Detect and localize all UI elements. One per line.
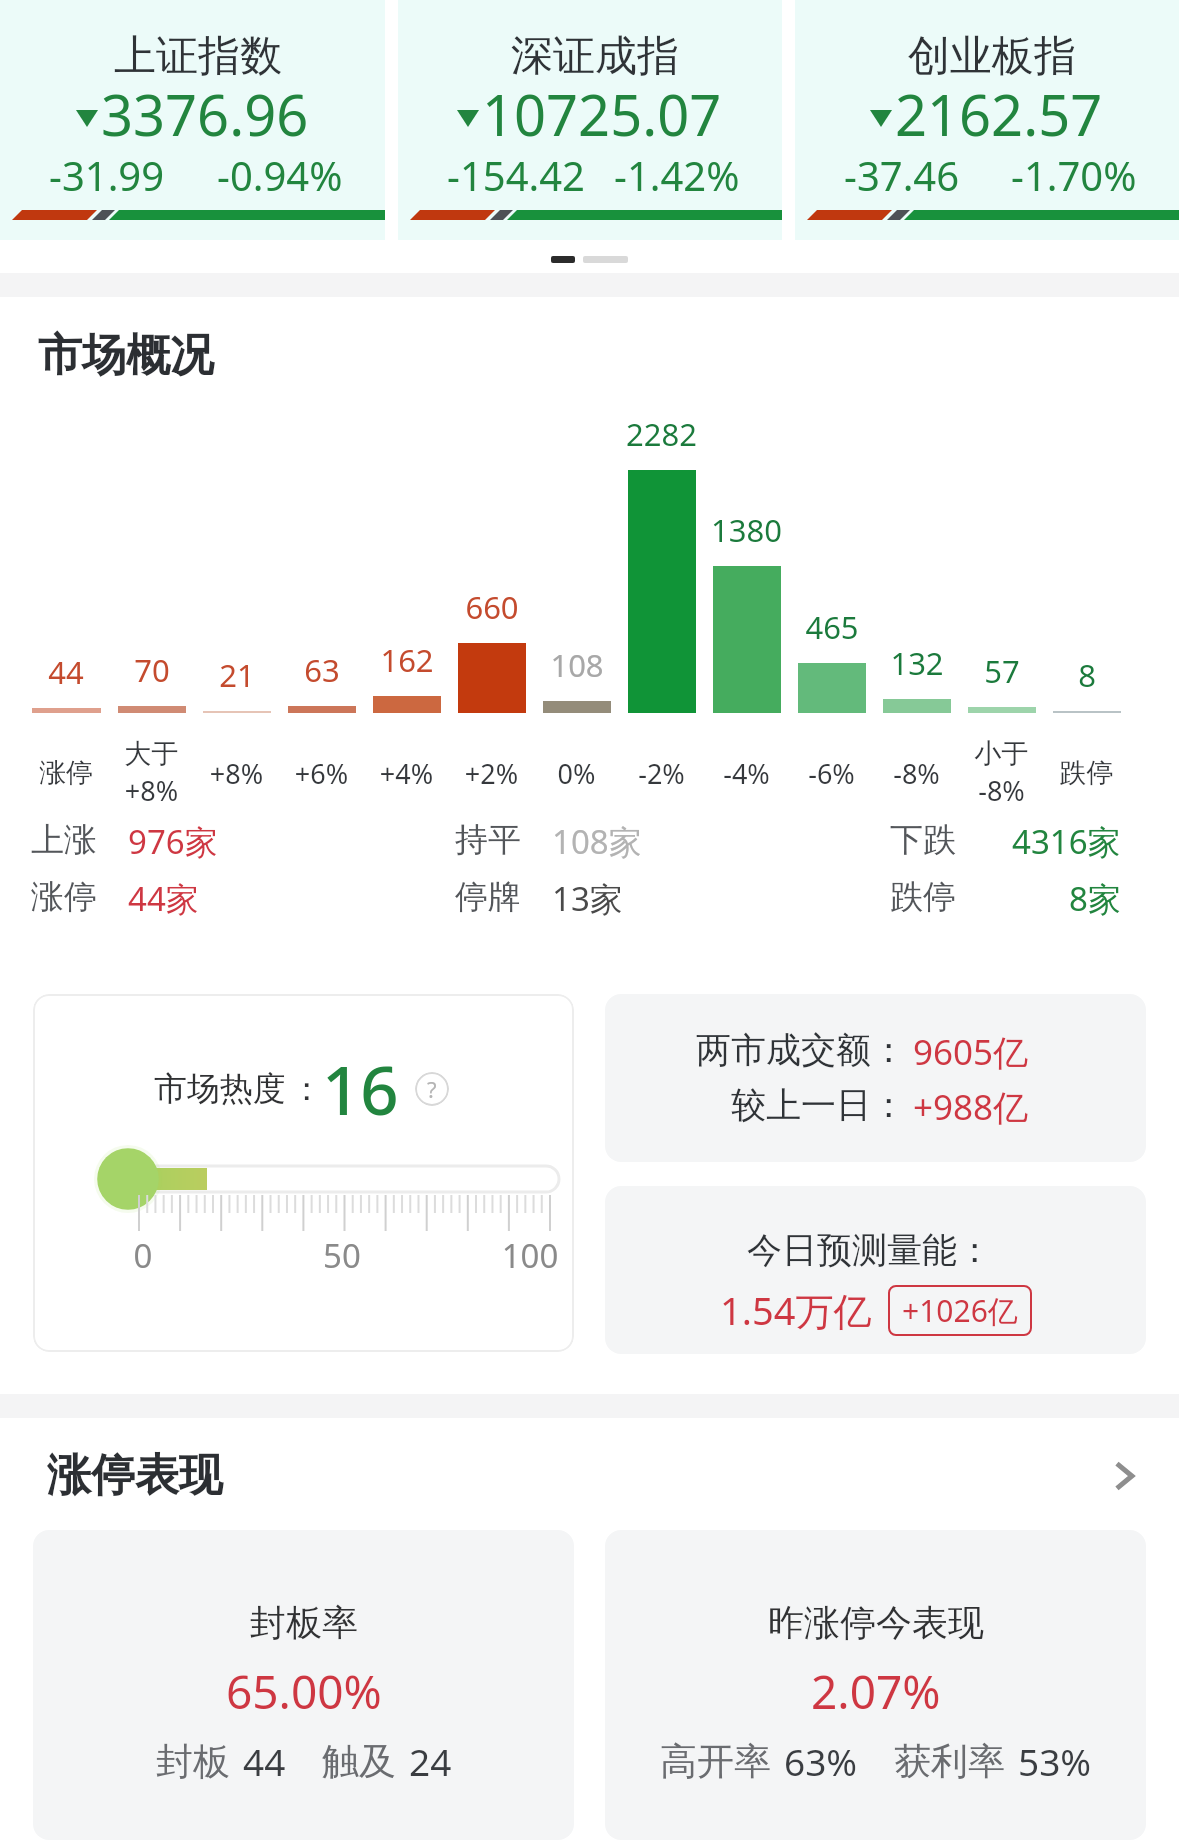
staticText: 跌停 xyxy=(890,876,956,918)
staticText: -31.99 xyxy=(49,148,165,202)
staticText: 深证成指 xyxy=(511,30,679,83)
staticText: -37.46 xyxy=(844,148,960,202)
staticText: 108家 xyxy=(552,819,642,861)
staticText: 两市成交额： xyxy=(605,1028,906,1072)
staticText: 65.00% xyxy=(226,1660,382,1723)
staticText: -8% xyxy=(874,755,959,792)
staticText: 1380 xyxy=(711,509,782,551)
staticText: 今日预测量能： xyxy=(747,1228,992,1272)
staticText: 9605亿 xyxy=(913,1028,1029,1076)
staticText: -6% xyxy=(789,755,874,792)
staticText: -1.70% xyxy=(1011,148,1137,202)
staticText: 53% xyxy=(1018,1736,1092,1786)
staticText: 44 xyxy=(243,1736,286,1786)
staticText: 63 xyxy=(304,649,340,691)
staticText: 封板 xyxy=(156,1738,230,1785)
staticText: 50 xyxy=(302,1233,382,1278)
button[interactable]: 涨停表现 xyxy=(38,1448,1141,1503)
staticText: -2% xyxy=(619,755,704,792)
staticText: 13家 xyxy=(552,876,623,918)
staticText: 市场概况 xyxy=(38,328,214,383)
staticText: 0 xyxy=(103,1233,183,1278)
staticText: 大于 +8% xyxy=(109,737,194,809)
staticText: 触及 xyxy=(322,1738,396,1785)
staticText: 较上一日： xyxy=(605,1083,906,1127)
staticText: 获利率 xyxy=(894,1738,1005,1785)
staticText: 0% xyxy=(534,755,619,792)
staticText: 16 xyxy=(322,1043,399,1134)
staticText: +2% xyxy=(449,755,534,792)
staticText: 封板率 xyxy=(250,1600,358,1645)
staticText: 44家 xyxy=(128,876,199,918)
staticText: 70 xyxy=(134,649,170,691)
staticText: -1.42% xyxy=(614,148,740,202)
button[interactable]: 两市成交额： xyxy=(605,994,1146,1162)
staticText: 100 xyxy=(490,1233,570,1278)
button[interactable]: 深证成指 xyxy=(398,0,782,240)
staticText: 涨停 xyxy=(31,876,97,918)
staticText: 63% xyxy=(784,1736,858,1786)
button[interactable]: 封板率 xyxy=(33,1530,574,1840)
staticText: 涨停 xyxy=(23,756,109,790)
staticText: 4316家 xyxy=(1012,819,1121,861)
staticText: 8家 xyxy=(1069,876,1121,918)
staticText: 660 xyxy=(465,586,519,628)
button[interactable]: 今日预测量能： xyxy=(605,1186,1146,1354)
button[interactable]: 页面指示器 xyxy=(551,256,628,263)
staticText: -0.94% xyxy=(217,148,343,202)
staticText: 下跌 xyxy=(890,819,956,861)
staticText: 上涨 xyxy=(31,819,97,861)
button[interactable]: 说明 xyxy=(415,1072,449,1106)
staticText: 976家 xyxy=(128,819,218,861)
staticText: 21 xyxy=(219,654,255,696)
other: 查看更多 xyxy=(1102,1454,1146,1498)
staticText: 创业板指 xyxy=(908,30,1076,83)
staticText: 162 xyxy=(380,639,434,681)
staticText: 108 xyxy=(550,644,604,686)
staticText: 8 xyxy=(1078,654,1096,696)
staticText: 涨停表现 xyxy=(47,1448,223,1503)
staticText: 2.07% xyxy=(811,1660,941,1723)
staticText: 停牌 xyxy=(455,876,521,918)
staticText: 465 xyxy=(805,606,859,648)
button[interactable]: 市场热度 xyxy=(33,994,574,1352)
staticText: 2162.57 xyxy=(895,76,1103,152)
staticText: 24 xyxy=(409,1736,452,1786)
staticText: 小于 -8% xyxy=(959,737,1044,809)
staticText: -4% xyxy=(704,755,789,792)
staticText: 持平 xyxy=(455,819,521,861)
staticText: 10725.07 xyxy=(482,76,722,152)
staticText: 44 xyxy=(48,651,84,693)
staticText: 57 xyxy=(984,650,1020,692)
staticText: ： xyxy=(290,1068,316,1110)
button[interactable]: 昨涨停今表现 xyxy=(605,1530,1146,1840)
staticText: 上证指数 xyxy=(114,30,282,83)
staticText: 昨涨停今表现 xyxy=(768,1600,984,1645)
staticText: +8% xyxy=(194,755,279,792)
staticText: +988亿 xyxy=(913,1083,1029,1131)
staticText: +1026亿 xyxy=(902,1290,1018,1331)
staticText: 132 xyxy=(890,642,944,684)
staticText: 3376.96 xyxy=(101,76,309,152)
staticText: 1.54万亿 xyxy=(720,1284,872,1336)
staticText: 2282 xyxy=(626,413,697,455)
button[interactable]: 创业板指 xyxy=(795,0,1179,240)
staticText: -154.42 xyxy=(447,148,585,202)
staticText: +6% xyxy=(279,755,364,792)
staticText: ? xyxy=(427,1074,437,1104)
button[interactable]: 上证指数 xyxy=(0,0,385,240)
staticText: +4% xyxy=(364,755,449,792)
staticText: 市场热度 xyxy=(154,1068,286,1110)
staticText: 高开率 xyxy=(660,1738,771,1785)
staticText: 跌停 xyxy=(1044,756,1129,790)
